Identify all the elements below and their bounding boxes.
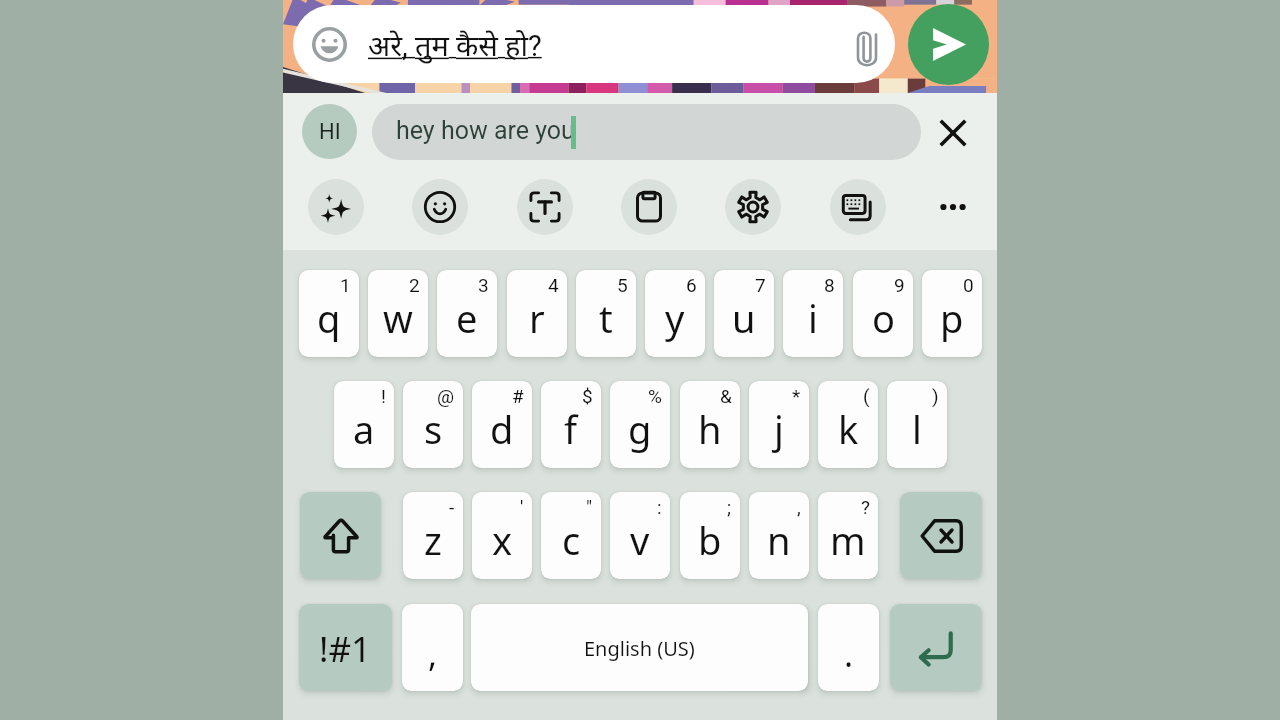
button[interactable]: @ xyxy=(403,381,463,468)
button[interactable]: , xyxy=(749,492,809,579)
staticText: c xyxy=(562,514,581,566)
staticText: " xyxy=(586,496,593,518)
button[interactable]: More options xyxy=(927,181,979,233)
staticText: 0 xyxy=(963,274,974,296)
button[interactable]: Close xyxy=(927,107,975,155)
button[interactable]: 1 xyxy=(299,270,359,357)
button[interactable]: * xyxy=(749,381,809,468)
staticText: x xyxy=(492,514,513,566)
button[interactable]: ) xyxy=(887,381,947,468)
button[interactable]: !#1 xyxy=(299,604,392,691)
staticText: - xyxy=(449,496,455,518)
staticText: g xyxy=(628,403,652,455)
button[interactable]: Attach xyxy=(843,20,891,68)
staticText: ? xyxy=(861,496,870,518)
staticText: z xyxy=(424,514,442,566)
button[interactable]: & xyxy=(680,381,740,468)
staticText: : xyxy=(657,496,662,518)
staticText: HI xyxy=(319,119,341,145)
staticText: 8 xyxy=(824,274,835,296)
button[interactable]: Switch keyboard xyxy=(830,179,886,235)
staticText: b xyxy=(698,514,722,566)
button[interactable]: 7 xyxy=(714,270,774,357)
staticText: f xyxy=(564,403,578,455)
staticText: @ xyxy=(437,385,455,407)
button[interactable]: Clipboard xyxy=(621,179,677,235)
staticText: 3 xyxy=(478,274,489,296)
staticText: r xyxy=(529,292,545,344)
staticText: n xyxy=(767,514,791,566)
staticText: 4 xyxy=(548,274,559,296)
staticText: a xyxy=(353,403,375,455)
button[interactable]: 0 xyxy=(922,270,982,357)
staticText: w xyxy=(383,292,413,344)
staticText: , xyxy=(797,496,801,518)
button[interactable]: 4 xyxy=(507,270,567,357)
button[interactable]: 9 xyxy=(853,270,913,357)
staticText: e xyxy=(456,292,478,344)
button[interactable]: Backspace xyxy=(900,492,982,579)
staticText: 1 xyxy=(340,274,351,296)
button[interactable]: ? xyxy=(818,492,878,579)
staticText: d xyxy=(490,403,514,455)
staticText: # xyxy=(512,385,524,407)
button[interactable]: 6 xyxy=(645,270,705,357)
staticText: English (US) xyxy=(584,635,695,662)
button[interactable]: hey how are you xyxy=(372,104,921,160)
staticText: ! xyxy=(381,385,386,407)
button[interactable]: English (US) xyxy=(471,604,808,691)
staticText: v xyxy=(630,514,650,566)
staticText: !#1 xyxy=(319,625,372,673)
staticText: % xyxy=(648,385,662,407)
staticText: ' xyxy=(520,496,524,518)
button[interactable]: $ xyxy=(541,381,601,468)
staticText: & xyxy=(720,385,732,407)
button[interactable]: % xyxy=(610,381,670,468)
button[interactable]: # xyxy=(472,381,532,468)
button[interactable]: Send xyxy=(908,4,989,85)
staticText: t xyxy=(599,292,613,344)
staticText: 5 xyxy=(617,274,628,296)
button[interactable]: HI xyxy=(302,104,357,159)
button[interactable]: Text scan xyxy=(517,179,573,235)
staticText: hey how are you xyxy=(396,116,575,145)
staticText: i xyxy=(808,292,818,344)
button[interactable]: 8 xyxy=(783,270,843,357)
staticText: $ xyxy=(582,385,593,407)
staticText: m xyxy=(830,514,866,566)
staticText: j xyxy=(774,403,784,455)
button[interactable]: Emoji xyxy=(412,179,468,235)
button[interactable]: ! xyxy=(334,381,394,468)
staticText: ) xyxy=(932,385,939,407)
button[interactable]: . xyxy=(818,604,879,691)
button[interactable]: 2 xyxy=(368,270,428,357)
button[interactable]: : xyxy=(610,492,670,579)
staticText: 9 xyxy=(894,274,905,296)
button[interactable]: , xyxy=(402,604,463,691)
staticText: * xyxy=(792,385,801,407)
button[interactable]: " xyxy=(541,492,601,579)
staticText: 6 xyxy=(686,274,697,296)
button[interactable]: Settings xyxy=(725,179,781,235)
staticText: ( xyxy=(863,385,870,407)
staticText: . xyxy=(844,631,854,677)
button[interactable]: Shift xyxy=(300,492,381,579)
staticText: , xyxy=(428,631,438,677)
staticText: y xyxy=(665,292,685,344)
staticText: 7 xyxy=(755,274,766,296)
staticText: s xyxy=(424,403,443,455)
button[interactable]: Enter xyxy=(890,604,982,691)
button[interactable]: ' xyxy=(472,492,532,579)
staticText: u xyxy=(732,292,756,344)
button[interactable]: 3 xyxy=(437,270,497,357)
staticText: h xyxy=(698,403,722,455)
staticText: l xyxy=(912,403,922,455)
button[interactable]: ( xyxy=(818,381,878,468)
button[interactable]: - xyxy=(403,492,463,579)
staticText: q xyxy=(317,292,341,344)
button[interactable]: AI suggestions xyxy=(308,179,364,235)
button[interactable]: अरे, तुम कैसे हो? xyxy=(293,5,895,83)
button[interactable]: 5 xyxy=(576,270,636,357)
button[interactable]: ; xyxy=(680,492,740,579)
staticText: o xyxy=(872,292,895,344)
